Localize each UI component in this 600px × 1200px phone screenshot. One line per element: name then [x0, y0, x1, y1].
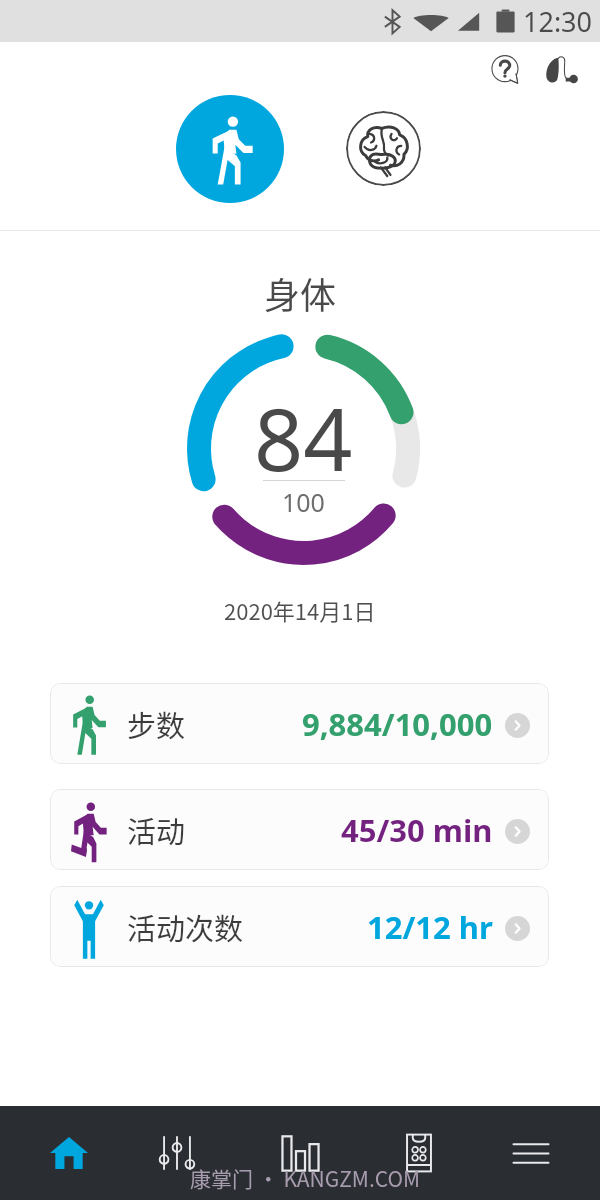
button[interactable]: 步数 — [50, 683, 549, 764]
staticText: 步数 — [127, 703, 186, 745]
staticText: 12/12 hr — [367, 906, 493, 948]
staticText: 活动次数 — [127, 906, 244, 948]
button[interactable]: Brain — [346, 111, 421, 186]
button[interactable]: Equalizer — [117, 1106, 237, 1200]
staticText: 2020年14月1日 — [224, 594, 376, 626]
button[interactable]: 活动 — [50, 789, 549, 870]
button[interactable]: Hearing aid — [538, 48, 582, 92]
staticText: 45/30 min — [341, 809, 493, 851]
staticText: 9,884/10,000 — [302, 703, 493, 745]
staticText: 活动 — [127, 809, 186, 851]
button[interactable]: Home — [9, 1106, 129, 1200]
staticText: 12:30 — [523, 3, 593, 40]
button[interactable]: Statistics — [240, 1106, 360, 1200]
button[interactable]: Remote control — [359, 1106, 479, 1200]
button[interactable]: Body — [176, 95, 284, 203]
staticText: 100 — [282, 485, 325, 519]
button[interactable]: 活动次数 — [50, 886, 549, 967]
staticText: 身体 — [264, 267, 337, 319]
button[interactable]: Help — [484, 48, 528, 92]
staticText: 84 — [254, 379, 353, 496]
button[interactable]: Menu — [471, 1106, 591, 1200]
staticText: 康掌门 • KANGZM.COM — [190, 1163, 421, 1193]
